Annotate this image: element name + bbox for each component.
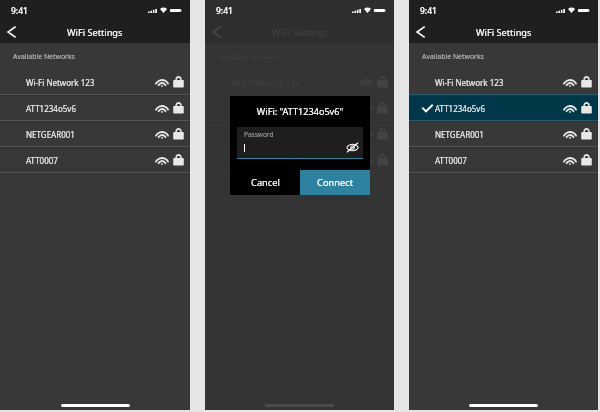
button[interactable]: NETGEAR001 — [0, 122, 190, 146]
staticText: ATT1234o5v6 — [26, 103, 76, 114]
button[interactable]: NETGEAR001 — [409, 122, 598, 146]
button[interactable]: Back — [205, 21, 227, 43]
staticText: ATT0007 — [231, 155, 263, 166]
staticText: ATT0007 — [435, 155, 467, 166]
staticText: ATT1234o5v6 — [231, 103, 281, 114]
staticText: 9:41 — [420, 5, 437, 17]
staticText: WiFi Settings — [476, 26, 532, 39]
staticText: NETGEAR001 — [231, 129, 280, 140]
button[interactable]: ATT0007 — [205, 148, 394, 172]
staticText: WiFi Settings — [272, 26, 328, 39]
staticText: NETGEAR001 — [435, 129, 484, 140]
button[interactable]: ATT0007 — [0, 148, 190, 172]
button[interactable]: ATT1234o5v6 — [0, 96, 190, 120]
staticText: Wi-Fi Network 123 — [435, 77, 504, 88]
staticText: 9:41 — [216, 5, 233, 17]
button[interactable]: ATT0007 — [409, 148, 598, 172]
button[interactable]: Back — [0, 21, 22, 43]
button[interactable]: ATT1234o5v6 — [205, 96, 394, 120]
staticText: ATT0007 — [26, 155, 58, 166]
staticText: NETGEAR001 — [26, 129, 75, 140]
staticText: Available Networks — [422, 52, 484, 61]
staticText: Connect — [317, 176, 354, 189]
staticText: Password — [244, 130, 274, 139]
staticText: Wi-Fi Network 123 — [231, 77, 300, 88]
button[interactable]: ATT1234o5v6 — [409, 96, 598, 120]
button[interactable]: Connect — [300, 170, 370, 195]
button[interactable]: Wi-Fi Network 123 — [0, 70, 190, 94]
staticText: WiFi Settings — [67, 26, 123, 39]
staticText: Wi-Fi Network 123 — [26, 77, 95, 88]
button[interactable]: Cancel — [230, 170, 300, 195]
button[interactable]: NETGEAR001 — [205, 122, 394, 146]
staticText: WiFi: "ATT1234o5v6" — [230, 105, 370, 117]
staticText: Cancel — [251, 176, 280, 189]
staticText: Available Networks — [13, 52, 75, 61]
staticText: ATT1234o5v6 — [435, 103, 485, 114]
button[interactable]: Back — [409, 21, 431, 43]
button[interactable]: Wi-Fi Network 123 — [409, 70, 598, 94]
staticText: 9:41 — [11, 5, 28, 17]
